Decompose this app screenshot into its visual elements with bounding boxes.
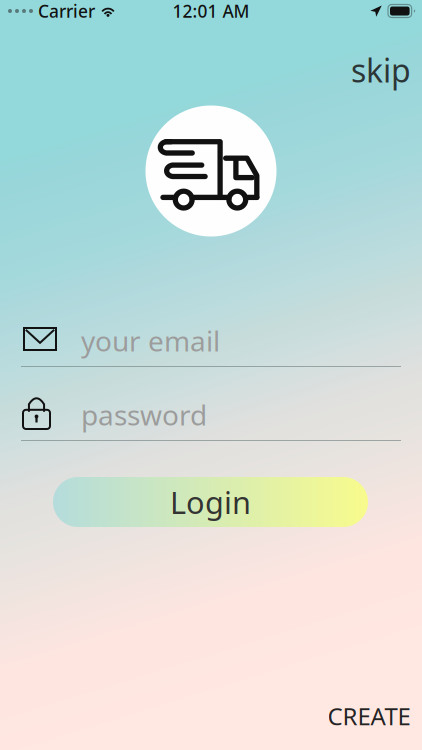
staticText: skip bbox=[351, 49, 411, 91]
button[interactable]: password bbox=[21, 393, 401, 441]
button[interactable]: skip bbox=[350, 50, 412, 90]
staticText: password bbox=[81, 396, 207, 433]
button[interactable]: Login bbox=[53, 477, 368, 527]
button[interactable]: CREATE bbox=[326, 699, 412, 733]
button[interactable]: your email bbox=[21, 319, 401, 367]
staticText: CREATE bbox=[327, 700, 410, 732]
staticText: Carrier bbox=[38, 0, 95, 22]
staticText: 12:01 AM bbox=[172, 0, 249, 22]
staticText: your email bbox=[81, 322, 220, 359]
staticText: Login bbox=[170, 482, 251, 522]
